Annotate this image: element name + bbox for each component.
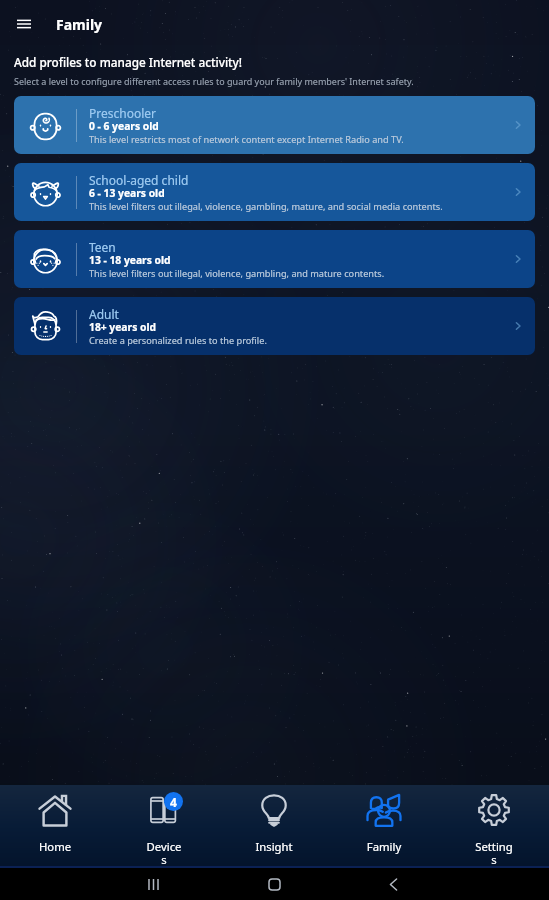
staticText: This level filters out illegal, violence…	[89, 267, 385, 280]
button[interactable]: Home	[0, 785, 109, 866]
button[interactable]: Preschooler	[14, 96, 535, 154]
button[interactable]: Adult	[14, 297, 535, 355]
button[interactable]: Insight	[219, 785, 329, 866]
staticText: Teen	[89, 239, 116, 255]
staticText: Add profiles to manage Internet activity…	[14, 54, 243, 70]
staticText: Devices	[146, 839, 182, 866]
staticText: Select a level to configure different ac…	[14, 75, 414, 87]
staticText: 18+ years old	[89, 320, 157, 334]
staticText: 13 - 18 years old	[89, 253, 171, 267]
staticText: Home	[32, 839, 78, 854]
staticText: This level filters out illegal, violence…	[89, 200, 443, 213]
staticText: Create a personalized rules to the profi…	[89, 334, 267, 347]
button[interactable]: Settings	[439, 785, 549, 866]
button[interactable]: Family	[329, 785, 439, 866]
staticText: Family	[361, 839, 407, 854]
staticText: Family	[56, 15, 103, 34]
staticText: Preschooler	[89, 105, 157, 121]
staticText: 0 - 6 years old	[89, 119, 159, 133]
button[interactable]: Home	[254, 868, 294, 900]
staticText: Adult	[89, 306, 119, 322]
staticText: School-aged child	[89, 172, 189, 188]
staticText: Insight	[251, 839, 297, 854]
button[interactable]: Recent apps	[133, 868, 173, 900]
staticText: 4	[170, 794, 177, 810]
button[interactable]: Back	[373, 868, 413, 900]
staticText: 6 - 13 years old	[89, 186, 165, 200]
button[interactable]: Open navigation menu	[0, 0, 48, 48]
button[interactable]: Teen	[14, 230, 535, 288]
button[interactable]: School-aged child	[14, 163, 535, 221]
staticText: This level restricts most of network con…	[89, 133, 404, 146]
staticText: Settings	[475, 839, 513, 866]
button[interactable]: 4	[109, 785, 219, 866]
